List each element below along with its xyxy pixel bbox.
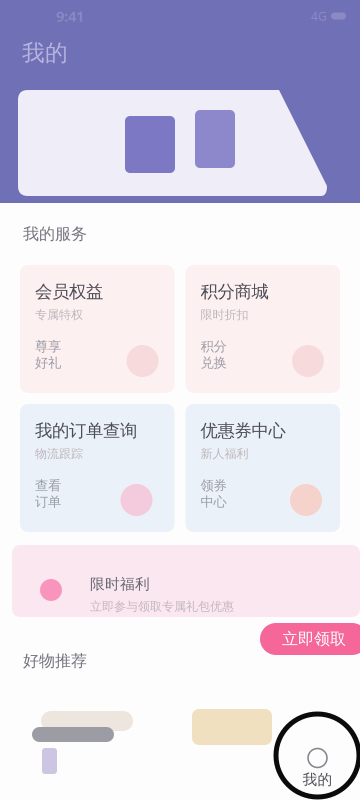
button[interactable]: 推荐商品二 [188,679,276,779]
staticText: 会员权益 [35,281,103,302]
button[interactable]: 推荐商品一 [28,679,140,779]
staticText: 4G [311,8,327,24]
button[interactable]: 我的订单查询 [20,404,174,532]
staticText: 积分 兑换 [200,338,226,371]
staticText: 立即参与领取专属礼包优惠 [90,599,234,614]
staticText: 9:41 [56,6,84,26]
staticText: 积分商城 [200,281,268,302]
staticText: 我的订单查询 [35,420,137,441]
button[interactable]: 会员权益 [20,265,174,393]
staticText: 我的 [22,39,68,67]
staticText: 尊享 好礼 [35,338,61,371]
staticText: 物流跟踪 [35,446,83,461]
staticText: 专属特权 [35,307,83,322]
button[interactable]: 限时福利 [0,545,360,617]
staticText: 新人福利 [200,446,248,461]
staticText: 我的服务 [23,224,87,244]
button[interactable]: 立即领取 [260,623,360,655]
button[interactable]: 积分商城 [185,265,340,393]
staticText: 优惠券中心 [200,420,285,441]
button[interactable]: 优惠券中心 [185,404,340,532]
staticText: 好物推荐 [23,651,87,671]
staticText: 立即领取 [282,629,346,649]
staticText: 限时福利 [90,575,150,593]
staticText: 查看 订单 [35,477,61,510]
staticText: 限时折扣 [200,307,248,322]
staticText: 领券 中心 [200,477,226,510]
staticText: 我的 [302,770,332,788]
